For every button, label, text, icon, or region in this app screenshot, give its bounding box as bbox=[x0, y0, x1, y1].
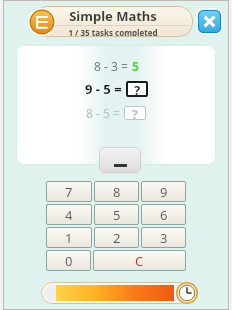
staticText: 8 bbox=[113, 183, 121, 201]
staticText: 6 bbox=[160, 206, 168, 224]
staticText: 1 / 35 tasks completed bbox=[68, 27, 158, 37]
staticText: 2 bbox=[113, 229, 121, 247]
button[interactable]: 1 bbox=[46, 227, 92, 248]
staticText: 3 bbox=[160, 229, 168, 247]
button[interactable]: 5 bbox=[94, 204, 139, 225]
staticText: C bbox=[135, 252, 144, 270]
button[interactable]: 7 bbox=[46, 181, 92, 202]
staticText: 8 - 3 = bbox=[94, 58, 128, 74]
staticText: 9 bbox=[160, 183, 168, 201]
staticText: 8 - 5 = bbox=[86, 105, 120, 121]
button[interactable]: 9 bbox=[141, 181, 186, 202]
button[interactable]: 3 bbox=[141, 227, 186, 248]
staticText: ? bbox=[134, 81, 141, 97]
button[interactable]: 8 bbox=[94, 181, 139, 202]
staticText: ? bbox=[132, 106, 138, 120]
staticText: Simple Maths bbox=[69, 7, 157, 25]
staticText: 5 bbox=[113, 206, 121, 224]
button[interactable]: Close bbox=[196, 8, 223, 35]
staticText: 1 bbox=[65, 229, 73, 247]
other: Timer bbox=[176, 282, 198, 304]
button[interactable]: Simple Maths bbox=[33, 6, 193, 37]
staticText: 5 bbox=[132, 58, 139, 74]
staticText: 9 - 5 = bbox=[85, 80, 122, 98]
button[interactable] bbox=[99, 147, 141, 173]
staticText: 7 bbox=[65, 183, 73, 201]
button[interactable] bbox=[41, 282, 191, 304]
button[interactable]: C bbox=[93, 250, 186, 271]
button[interactable]: Menu bbox=[28, 8, 56, 36]
button[interactable]: 4 bbox=[46, 204, 92, 225]
staticText: 4 bbox=[65, 206, 73, 224]
button[interactable]: 6 bbox=[141, 204, 186, 225]
button[interactable]: 2 bbox=[94, 227, 139, 248]
staticText: 0 bbox=[65, 252, 73, 270]
button[interactable]: 0 bbox=[46, 250, 91, 271]
